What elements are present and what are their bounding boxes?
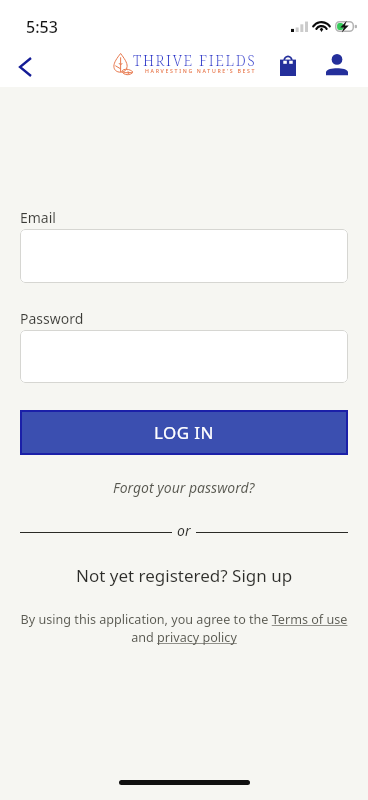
staticText: THRIVE FIELDS [133, 51, 257, 70]
staticText: Email [20, 208, 56, 227]
staticText: LOG IN [154, 421, 214, 444]
button[interactable] [20, 229, 348, 283]
button[interactable] [20, 330, 348, 383]
button[interactable]: Forgot your password? [113, 478, 255, 497]
button[interactable]: Back [6, 48, 44, 86]
staticText: HARVESTING NATURE'S BEST [145, 67, 257, 74]
button[interactable]: Shopping bag [270, 48, 306, 84]
button[interactable]: Not yet registered? Sign up [76, 564, 293, 587]
staticText: or [177, 521, 191, 538]
button[interactable]: Account [319, 47, 355, 83]
staticText: 5:53 [26, 16, 58, 38]
button[interactable]: LOG IN [20, 410, 348, 455]
staticText: Password [20, 309, 84, 328]
button[interactable]: By using this application, you agree to … [18, 611, 350, 646]
